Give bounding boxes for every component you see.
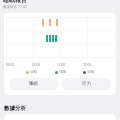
button[interactable]: 活力	[62, 78, 111, 90]
staticText: 睡眠報告	[3, 0, 27, 4]
staticText: 12:00	[57, 63, 66, 67]
staticText: 淺睡	[59, 70, 66, 74]
staticText: 06:00	[32, 63, 41, 67]
button[interactable]: 淺睡	[55, 70, 66, 74]
staticText: 活力	[82, 81, 91, 87]
staticText: 清醒	[30, 70, 37, 74]
button[interactable]: 清醒	[26, 70, 37, 74]
button[interactable]: 睡眠	[9, 78, 58, 90]
staticText: 最後同步 11:42	[3, 4, 27, 9]
staticText: 00:00	[6, 63, 15, 67]
staticText: 睡眠	[29, 81, 38, 87]
staticText: 18:00	[83, 63, 92, 67]
staticText: 深睡	[87, 70, 94, 74]
staticText: 數據分析	[4, 105, 26, 112]
button[interactable]: 深睡	[83, 70, 94, 74]
